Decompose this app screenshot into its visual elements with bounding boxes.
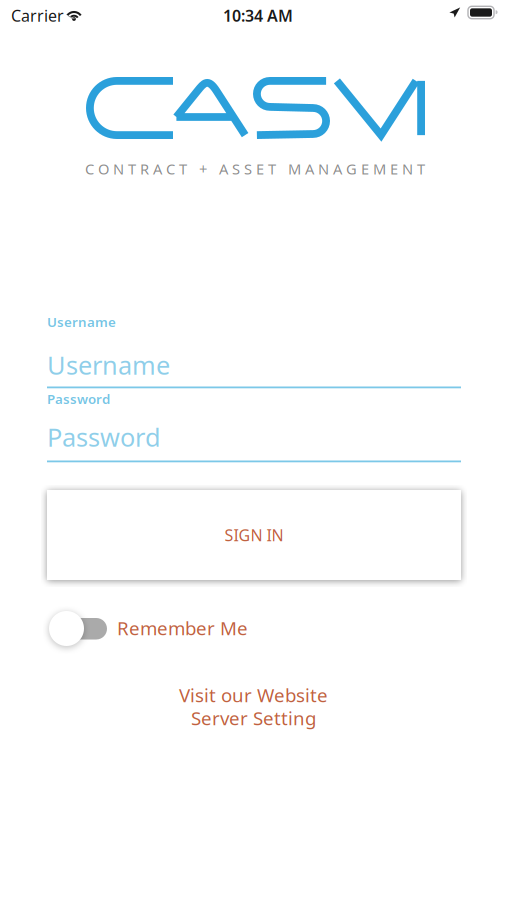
staticText: Remember Me [117,616,248,640]
button[interactable]: Visit our Website [0,687,507,703]
button[interactable]: Remember Me [47,611,337,647]
staticText: SIGN IN [224,524,283,546]
staticText: Username [47,313,116,331]
staticText: Server Setting [191,706,316,730]
staticText: Carrier [11,5,64,26]
staticText: Password [47,420,161,454]
button[interactable]: SIGN IN [47,490,461,580]
button[interactable]: Server Setting [0,710,507,726]
staticText: Visit our Website [179,683,328,707]
staticText: C O N T R A C T + A S S E T M A N A G E … [85,159,425,178]
staticText: 10:34 AM [223,5,293,26]
staticText: Username [47,348,170,382]
staticText: Password [47,390,110,408]
